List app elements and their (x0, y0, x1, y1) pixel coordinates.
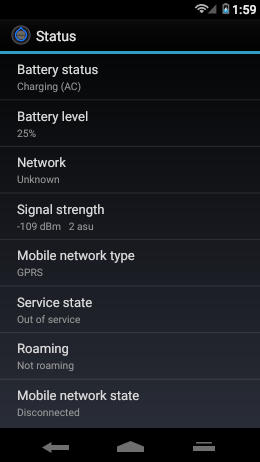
staticText: GPRS (17, 266, 43, 278)
button[interactable]: Mobile network type (0, 240, 260, 287)
staticText: Out of service (17, 313, 81, 325)
staticText: Battery level (17, 109, 89, 124)
staticText: Disconnected (17, 406, 80, 418)
button[interactable]: Service state (0, 287, 260, 334)
staticText: Signal strength (17, 202, 105, 217)
staticText: Mobile network type (17, 248, 135, 263)
staticText: Mobile network state (17, 388, 140, 403)
staticText: Network (17, 155, 66, 170)
staticText: Battery status (17, 62, 99, 77)
staticText: Status (36, 28, 77, 45)
staticText: Unknown (17, 173, 60, 185)
button[interactable]: Back (32, 428, 79, 462)
staticText: Not roaming (17, 359, 75, 371)
button[interactable]: Recent apps (180, 428, 227, 462)
staticText: -109 dBm 2 asu (17, 220, 94, 232)
button[interactable]: Home (106, 428, 154, 462)
staticText: 25% (17, 127, 37, 139)
button[interactable]: Mobile network state (0, 380, 260, 427)
button[interactable]: Signal strength (0, 194, 260, 241)
button[interactable]: Network (0, 147, 260, 194)
button[interactable]: Battery status (0, 54, 260, 101)
staticText: Service state (17, 295, 93, 310)
button[interactable]: Battery level (0, 101, 260, 148)
button[interactable]: Roaming (0, 333, 260, 380)
staticText: Roaming (17, 341, 69, 356)
staticText: Charging (AC) (17, 80, 82, 92)
staticText: 1:59 (232, 2, 257, 17)
